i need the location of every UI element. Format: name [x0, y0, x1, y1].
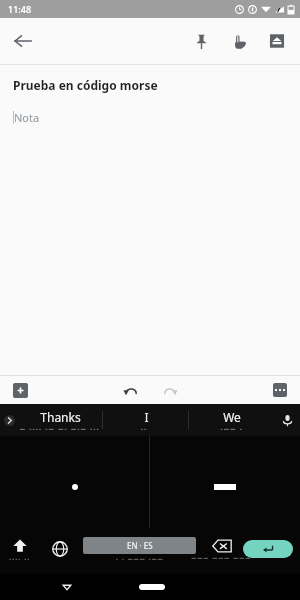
button[interactable]: Enter — [243, 528, 293, 570]
staticText: EN · ES — [127, 540, 153, 551]
button[interactable]: Voice input — [274, 404, 300, 436]
button[interactable]: Undo — [117, 377, 143, 403]
button[interactable]: Dash — [150, 436, 300, 528]
button[interactable]: Back — [0, 18, 46, 64]
staticText: Thanks — [40, 409, 81, 425]
staticText: I — [144, 409, 149, 425]
button[interactable]: Shift — [0, 528, 40, 570]
button[interactable]: Pin note — [182, 22, 220, 60]
button[interactable]: Archive — [258, 22, 296, 60]
button[interactable]: Change language — [40, 528, 79, 570]
button[interactable]: EN · ES — [79, 528, 200, 570]
staticText: Prueba en código morse — [13, 77, 158, 93]
staticText: We — [223, 409, 241, 425]
button[interactable]: Dot — [0, 436, 149, 528]
button[interactable]: I — [103, 404, 188, 436]
button[interactable]: Backspace — [200, 528, 243, 570]
button[interactable]: Reminder — [220, 22, 258, 60]
button[interactable]: Hide keyboard — [56, 576, 78, 598]
staticText: Nota — [14, 110, 40, 125]
button[interactable]: Expand suggestions — [0, 404, 18, 436]
button[interactable]: Thanks — [18, 404, 102, 436]
button[interactable]: Add — [6, 376, 34, 404]
button[interactable]: Home — [139, 584, 165, 590]
staticText: 11:48 — [8, 3, 32, 15]
button[interactable]: More options — [266, 376, 294, 404]
button[interactable]: Redo — [157, 377, 183, 403]
button[interactable]: We — [189, 404, 274, 436]
